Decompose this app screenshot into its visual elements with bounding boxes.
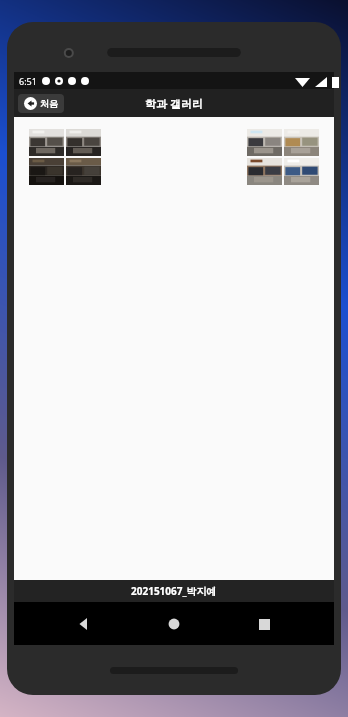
button[interactable]: Home [154,604,194,644]
button[interactable] [29,129,64,156]
button[interactable] [247,158,282,185]
staticText: 처음 [40,98,58,109]
button[interactable] [284,129,319,156]
staticText: 학과 갤러리 [145,96,203,111]
button[interactable] [66,158,101,185]
button[interactable] [247,129,282,156]
button[interactable]: Recent apps [244,604,284,644]
button[interactable]: Back [64,604,104,644]
button[interactable] [66,129,101,156]
staticText: 202151067_박지예 [131,584,217,598]
staticText: 6:51 [19,75,37,87]
button[interactable] [29,158,64,185]
button[interactable] [284,158,319,185]
button[interactable]: 처음 [18,94,64,113]
